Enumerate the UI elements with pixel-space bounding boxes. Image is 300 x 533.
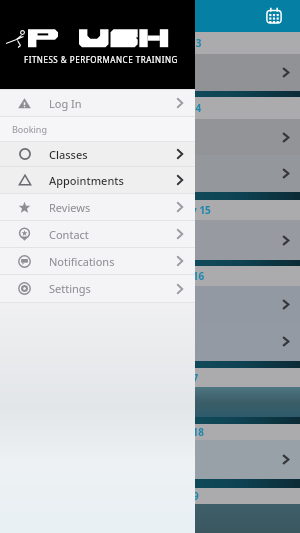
staticText: Saturday 19: [140, 489, 199, 503]
staticText: Thursday 17: [138, 371, 199, 385]
button[interactable]: [0, 155, 300, 192]
button[interactable]: [0, 440, 300, 479]
staticText: FITNESS & PERFORMANCE TRAINING: [24, 54, 178, 65]
staticText: Classes: [49, 147, 88, 162]
button[interactable]: [0, 220, 300, 260]
staticText: Reviews: [49, 200, 91, 215]
button[interactable]: Contact: [0, 221, 195, 247]
button[interactable]: Notifications: [0, 248, 195, 274]
staticText: Monday 14: [147, 101, 202, 115]
staticText: Log In: [49, 96, 82, 111]
button[interactable]: Classes: [0, 142, 195, 166]
staticText: Tuesday 15: [156, 203, 211, 217]
staticText: Booking: [12, 123, 47, 135]
staticText: Appointments: [49, 173, 124, 188]
staticText: Wednesday 16: [133, 269, 205, 283]
button[interactable]: [0, 286, 300, 322]
staticText: Sunday 13: [151, 36, 202, 50]
staticText: Settings: [49, 281, 91, 296]
staticText: Friday 18: [159, 425, 205, 439]
button[interactable]: [0, 119, 300, 155]
button[interactable]: Calendar: [260, 2, 288, 30]
staticText: Contact: [49, 227, 89, 242]
button[interactable]: Settings: [0, 275, 195, 302]
staticText: Notifications: [49, 254, 115, 269]
button[interactable]: [0, 54, 300, 91]
button[interactable]: Log In: [0, 90, 195, 116]
button[interactable]: Appointments: [0, 167, 195, 193]
button[interactable]: Reviews: [0, 194, 195, 220]
button[interactable]: [0, 322, 300, 361]
